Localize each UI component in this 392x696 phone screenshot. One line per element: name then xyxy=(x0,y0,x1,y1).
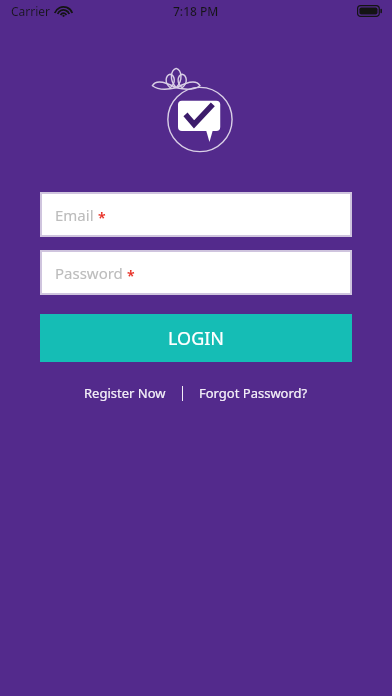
staticText: Forgot Password? xyxy=(199,384,308,402)
staticText: 7:18 PM xyxy=(173,3,219,19)
staticText: Email xyxy=(55,205,94,225)
staticText: * xyxy=(98,208,106,227)
other: Wi-Fi xyxy=(56,6,71,17)
staticText: Password xyxy=(55,263,123,283)
button[interactable]: LOGIN xyxy=(40,314,352,362)
staticText: LOGIN xyxy=(168,326,225,351)
button[interactable]: Email xyxy=(42,194,350,235)
button[interactable]: Forgot Password? xyxy=(193,380,314,406)
staticText: Register Now xyxy=(84,384,166,402)
other: Battery xyxy=(357,5,383,17)
staticText: * xyxy=(127,266,135,285)
staticText: Carrier xyxy=(11,3,51,19)
other: App logo xyxy=(152,68,240,156)
button[interactable]: Password xyxy=(42,252,350,293)
button[interactable]: Register Now xyxy=(78,380,172,406)
